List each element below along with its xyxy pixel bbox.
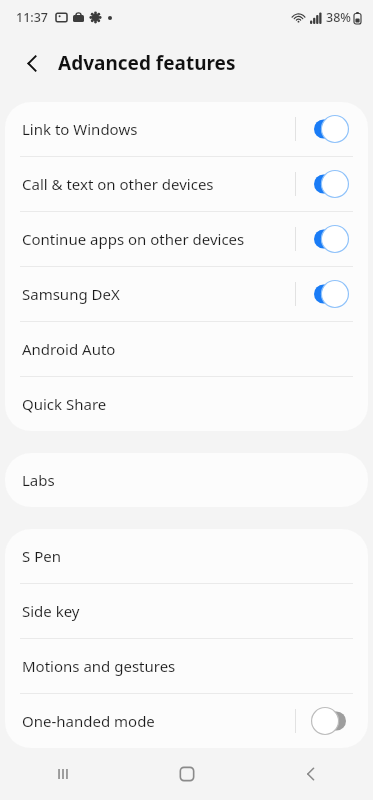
staticText: 11:37 (16, 9, 49, 26)
staticText: Continue apps on other devices (22, 229, 295, 249)
button[interactable]: Samsung DeX (5, 267, 368, 321)
staticText: Quick Share (22, 394, 107, 414)
staticText: Call & text on other devices (22, 174, 295, 194)
button[interactable]: S Pen (5, 529, 368, 583)
staticText: Motions and gestures (22, 656, 176, 676)
button[interactable]: Back (14, 45, 50, 81)
button[interactable]: Continue apps on other devices (310, 224, 350, 254)
staticText: Side key (22, 601, 80, 621)
button[interactable]: Call & text on other devices (310, 169, 350, 199)
staticText: Link to Windows (22, 119, 295, 139)
button[interactable]: Recent apps (0, 748, 125, 800)
button[interactable]: One-handed mode (5, 694, 368, 748)
button[interactable]: Side key (5, 584, 368, 638)
button[interactable]: Link to Windows (310, 114, 350, 144)
button[interactable]: Home (125, 748, 249, 800)
button[interactable]: Continue apps on other devices (5, 212, 368, 266)
button[interactable]: Android Auto (5, 322, 368, 376)
button[interactable]: Call & text on other devices (5, 157, 368, 211)
button[interactable]: Motions and gestures (5, 639, 368, 693)
staticText: One-handed mode (22, 711, 295, 731)
button[interactable]: One-handed mode (310, 706, 350, 736)
staticText: Advanced features (58, 50, 236, 76)
button[interactable]: Back (249, 748, 373, 800)
button[interactable]: Link to Windows (5, 102, 368, 156)
staticText: Android Auto (22, 339, 116, 359)
button[interactable]: Samsung DeX (310, 279, 350, 309)
staticText: S Pen (22, 546, 61, 566)
staticText: Samsung DeX (22, 284, 295, 304)
button[interactable]: Labs (5, 453, 368, 507)
staticText: Labs (22, 470, 55, 490)
button[interactable]: Quick Share (5, 377, 368, 431)
staticText: 38% (326, 9, 351, 26)
